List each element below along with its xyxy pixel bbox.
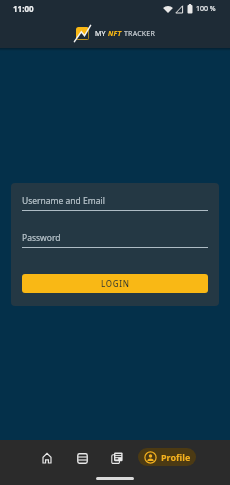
button[interactable]: Username and Email [22, 195, 208, 211]
button[interactable]: Password [22, 232, 208, 248]
button[interactable] [106, 447, 128, 469]
staticText: TRACKER [124, 29, 155, 39]
staticText: 11:00 [13, 3, 34, 14]
button[interactable]: Profile [138, 448, 196, 466]
staticText: LOGIN [101, 278, 130, 289]
button[interactable] [36, 447, 58, 469]
staticText: Profile [161, 451, 191, 463]
button[interactable]: LOGIN [22, 274, 208, 293]
staticText: NFT [108, 29, 122, 39]
button[interactable] [71, 447, 93, 469]
staticText: MY [95, 29, 106, 39]
staticText: Username and Email [22, 195, 105, 207]
staticText: 100 % [196, 4, 216, 14]
staticText: Password [22, 232, 61, 244]
